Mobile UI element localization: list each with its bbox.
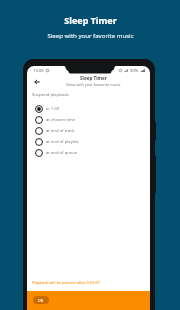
staticText: Playback will be paused after 0:59:57 <box>32 280 100 285</box>
staticText: Sleep Timer <box>64 14 117 26</box>
staticText: in 1:00 <box>46 106 60 112</box>
button[interactable]: Back <box>30 75 43 88</box>
button[interactable]: at end of track <box>27 125 150 136</box>
staticText: Sleep Timer <box>80 75 107 81</box>
staticText: Suspend playback: <box>32 91 70 97</box>
button[interactable]: ON <box>33 296 49 304</box>
staticText: at chosen time <box>46 117 75 123</box>
staticText: Sleep with your favourite music <box>66 82 121 87</box>
staticText: 30% <box>130 68 139 74</box>
button[interactable]: at end of queue <box>27 147 150 158</box>
staticText: Sleep with your favorite music <box>47 31 134 39</box>
staticText: at end of playlist <box>46 139 79 145</box>
staticText: 13:06 <box>33 68 44 74</box>
staticText: at end of queue <box>46 150 78 156</box>
button[interactable]: in 1:00 <box>27 103 150 114</box>
button[interactable]: at end of playlist <box>27 136 150 147</box>
staticText: ON <box>38 298 44 303</box>
staticText: at end of track <box>46 128 75 134</box>
button[interactable]: at chosen time <box>27 114 150 125</box>
